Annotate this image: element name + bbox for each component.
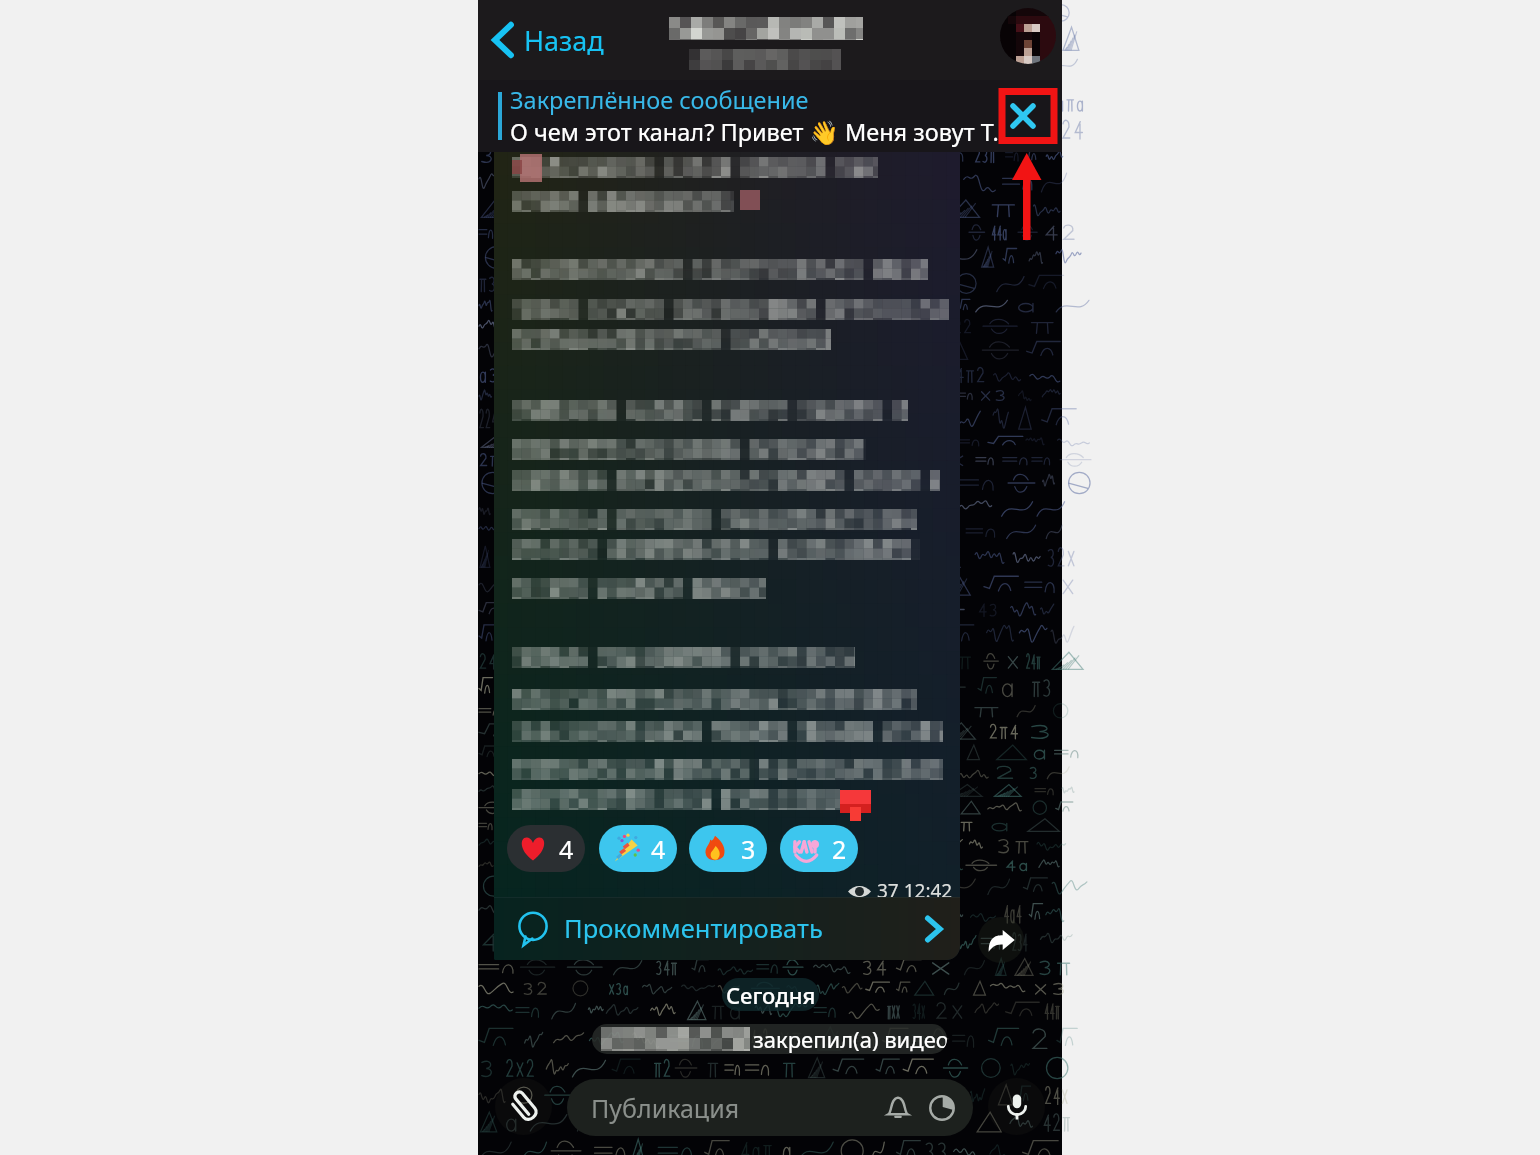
button[interactable]: Statistics — [923, 1089, 961, 1127]
button[interactable]: 4 — [599, 825, 677, 872]
button[interactable]: Back — [478, 0, 618, 80]
button[interactable]: Attach — [495, 1078, 552, 1135]
button[interactable]: Notifications — [879, 1089, 917, 1127]
staticText: Назад — [524, 22, 604, 59]
staticText: Сегодня — [726, 980, 816, 1010]
staticText: 4 — [651, 832, 666, 866]
button[interactable]: Voice message — [988, 1078, 1045, 1135]
button[interactable]: Channel profile — [1000, 8, 1056, 64]
staticText: Публикация — [591, 1091, 740, 1125]
button[interactable]: Сегодня — [722, 978, 819, 1011]
staticText: 4 — [559, 832, 574, 866]
staticText: 3 — [741, 832, 756, 866]
staticText: 2 — [832, 832, 847, 866]
button[interactable]: 3 — [689, 825, 767, 872]
button[interactable]: Закреплённое сообщение — [478, 80, 1062, 152]
button[interactable]: Публикация — [567, 1079, 973, 1136]
staticText: Закреплённое сообщение — [510, 84, 809, 116]
button[interactable]: Channel info — [658, 10, 874, 72]
staticText: Прокомментировать — [564, 911, 823, 946]
button[interactable]: Share — [978, 917, 1024, 963]
staticText: закрепил(а) видео — [753, 1024, 947, 1054]
button[interactable]: Прокомментировать — [494, 897, 960, 960]
button[interactable]: Close pinned message — [996, 89, 1050, 143]
staticText: О чем этот канал? Привет 👋 Меня зовут Т.… — [510, 116, 1004, 148]
button[interactable]: 2 — [780, 825, 858, 872]
staticText: 37 12:42 — [877, 878, 953, 904]
button[interactable]: закрепил(а) видео — [592, 1024, 947, 1054]
button[interactable]: 4 — [507, 825, 585, 872]
